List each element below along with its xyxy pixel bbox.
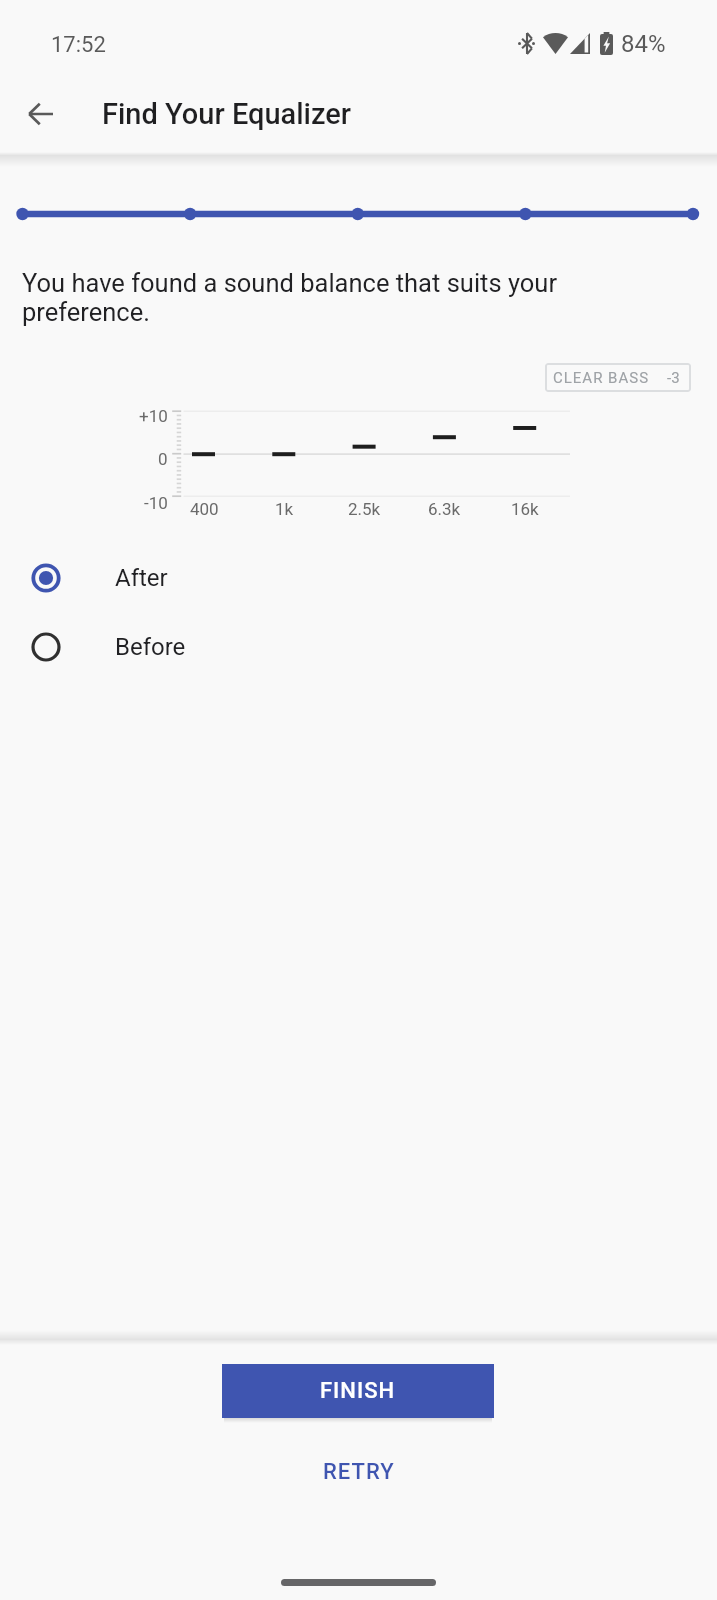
staticText: 2.5k (348, 499, 381, 519)
staticText: 0 (158, 449, 168, 469)
staticText: FINISH (320, 1378, 396, 1404)
staticText: 400 (190, 499, 219, 519)
button[interactable]: RETRY (298, 1446, 419, 1498)
staticText: 6.3k (428, 499, 461, 519)
staticText: Find Your Equalizer (102, 97, 352, 131)
staticText: -3 (667, 369, 680, 387)
staticText: You have found a sound balance that suit… (22, 268, 558, 327)
staticText: +10 (139, 406, 168, 426)
staticText: 17:52 (51, 32, 106, 58)
button[interactable]: FINISH (222, 1364, 494, 1418)
staticText: After (115, 564, 168, 592)
staticText: RETRY (323, 1459, 395, 1485)
staticText: Before (115, 633, 186, 661)
button[interactable]: Before (0, 615, 717, 679)
button[interactable]: Back (16, 90, 64, 138)
staticText: -10 (144, 493, 168, 513)
button[interactable]: CLEAR BASS (545, 363, 691, 392)
staticText: 1k (275, 499, 294, 519)
staticText: CLEAR BASS (553, 369, 650, 387)
staticText: 16k (511, 499, 539, 519)
staticText: 84% (621, 30, 666, 58)
button[interactable]: After (0, 546, 717, 610)
